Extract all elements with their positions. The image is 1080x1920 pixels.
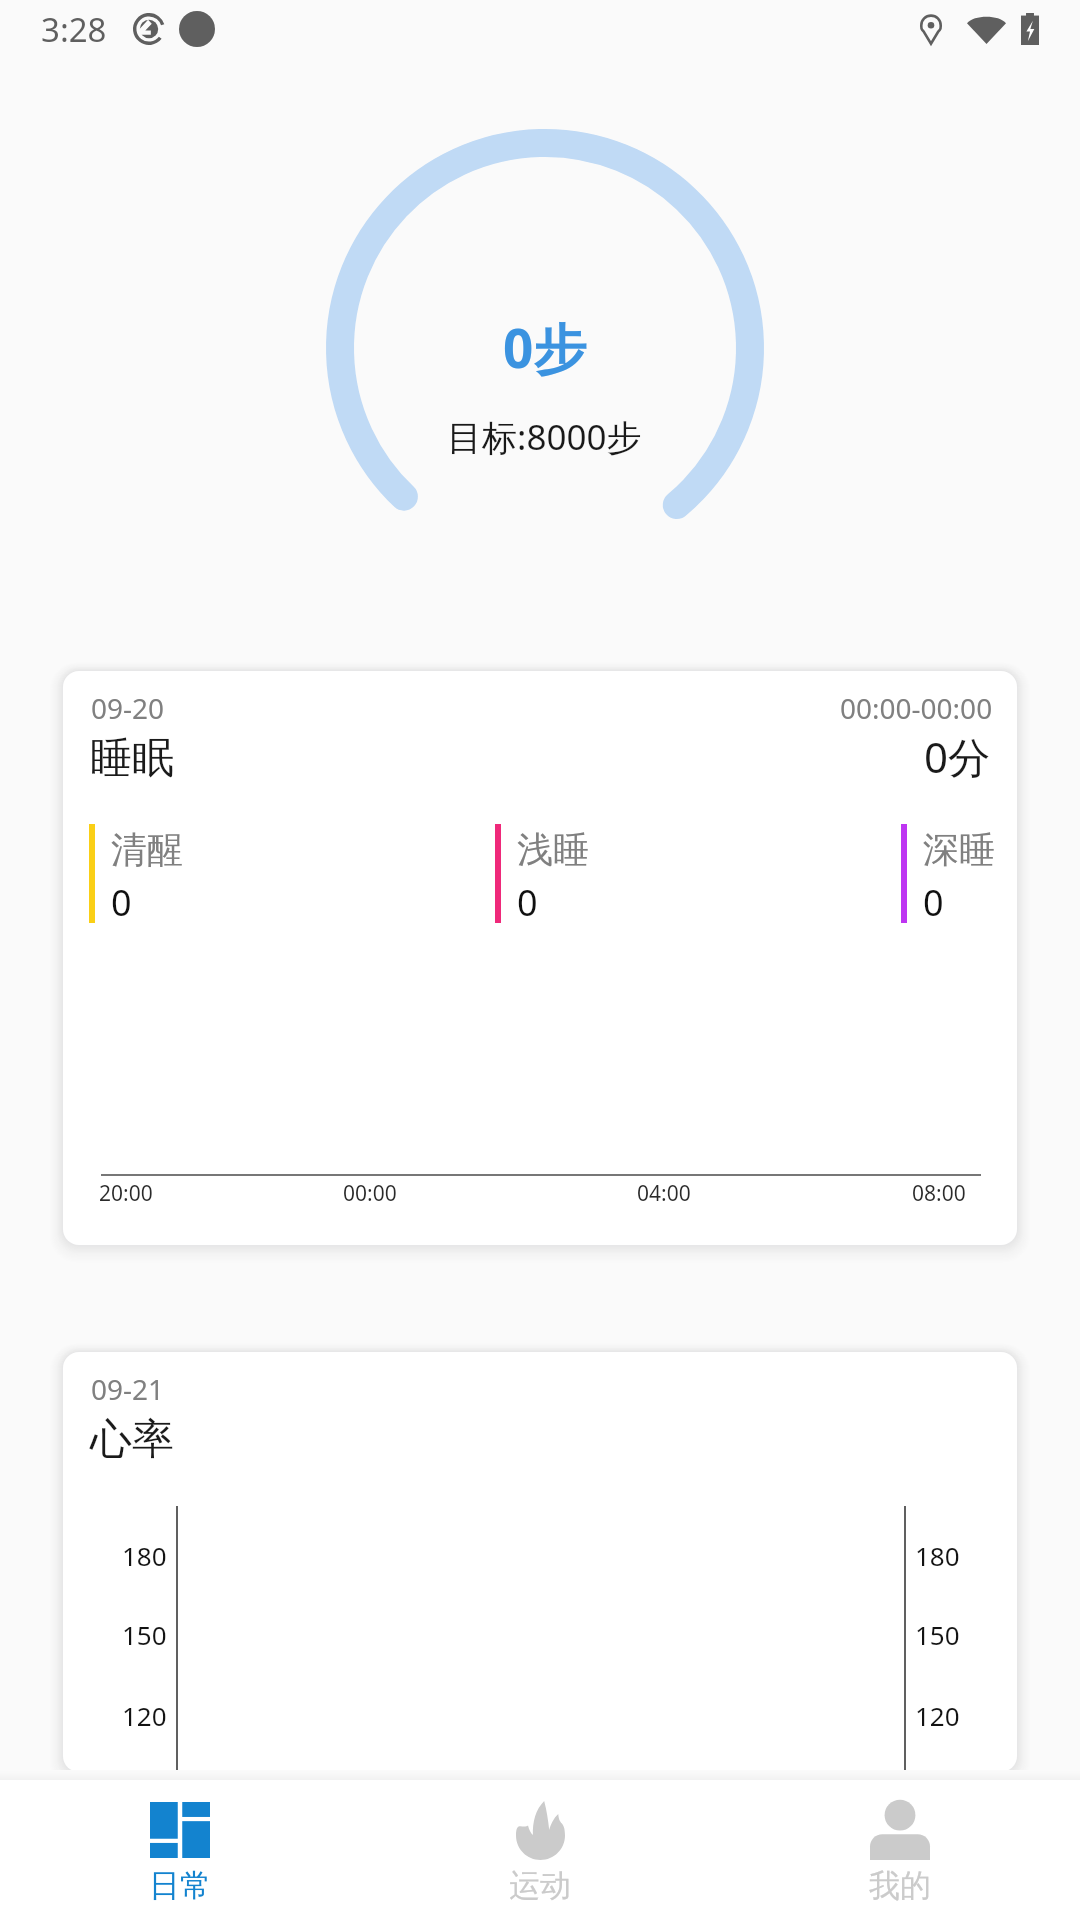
staticText: 120	[122, 1698, 167, 1733]
staticText: 心率	[90, 1413, 174, 1466]
button[interactable]: 09-20	[63, 671, 1017, 1245]
staticText: 目标:8000步	[447, 413, 642, 461]
staticText: 150	[915, 1617, 960, 1652]
staticText: 0	[517, 878, 538, 927]
button[interactable]: 09-21	[63, 1352, 1017, 1772]
staticText: 深睡	[923, 827, 995, 872]
staticText: 120	[915, 1698, 960, 1733]
staticText: 0	[923, 878, 944, 927]
staticText: 浅睡	[517, 827, 589, 872]
staticText: 0分	[924, 728, 991, 785]
staticText: 0	[111, 878, 132, 927]
button[interactable]: 我的	[720, 1780, 1080, 1920]
staticText: 00:00	[343, 1179, 397, 1208]
button[interactable]: 日常	[0, 1780, 360, 1920]
staticText: 09-21	[91, 1370, 165, 1408]
staticText: 0步	[503, 311, 587, 381]
staticText: 睡眠	[90, 732, 174, 785]
staticText: 08:00	[912, 1179, 966, 1208]
staticText: 日常	[149, 1866, 211, 1905]
staticText: 180	[915, 1538, 960, 1573]
other: Location	[920, 13, 942, 45]
other: App indicator	[133, 13, 165, 45]
staticText: 180	[122, 1538, 167, 1573]
staticText: 清醒	[111, 827, 183, 872]
staticText: 150	[122, 1617, 167, 1652]
staticText: 09-20	[91, 689, 165, 727]
staticText: 04:00	[637, 1179, 691, 1208]
staticText: 我的	[869, 1866, 931, 1905]
staticText: 00:00-00:00	[840, 689, 993, 727]
staticText: 3:28	[41, 7, 107, 52]
staticText: 20:00	[99, 1179, 153, 1208]
button[interactable]: 运动	[360, 1780, 720, 1920]
staticText: 运动	[509, 1866, 571, 1905]
